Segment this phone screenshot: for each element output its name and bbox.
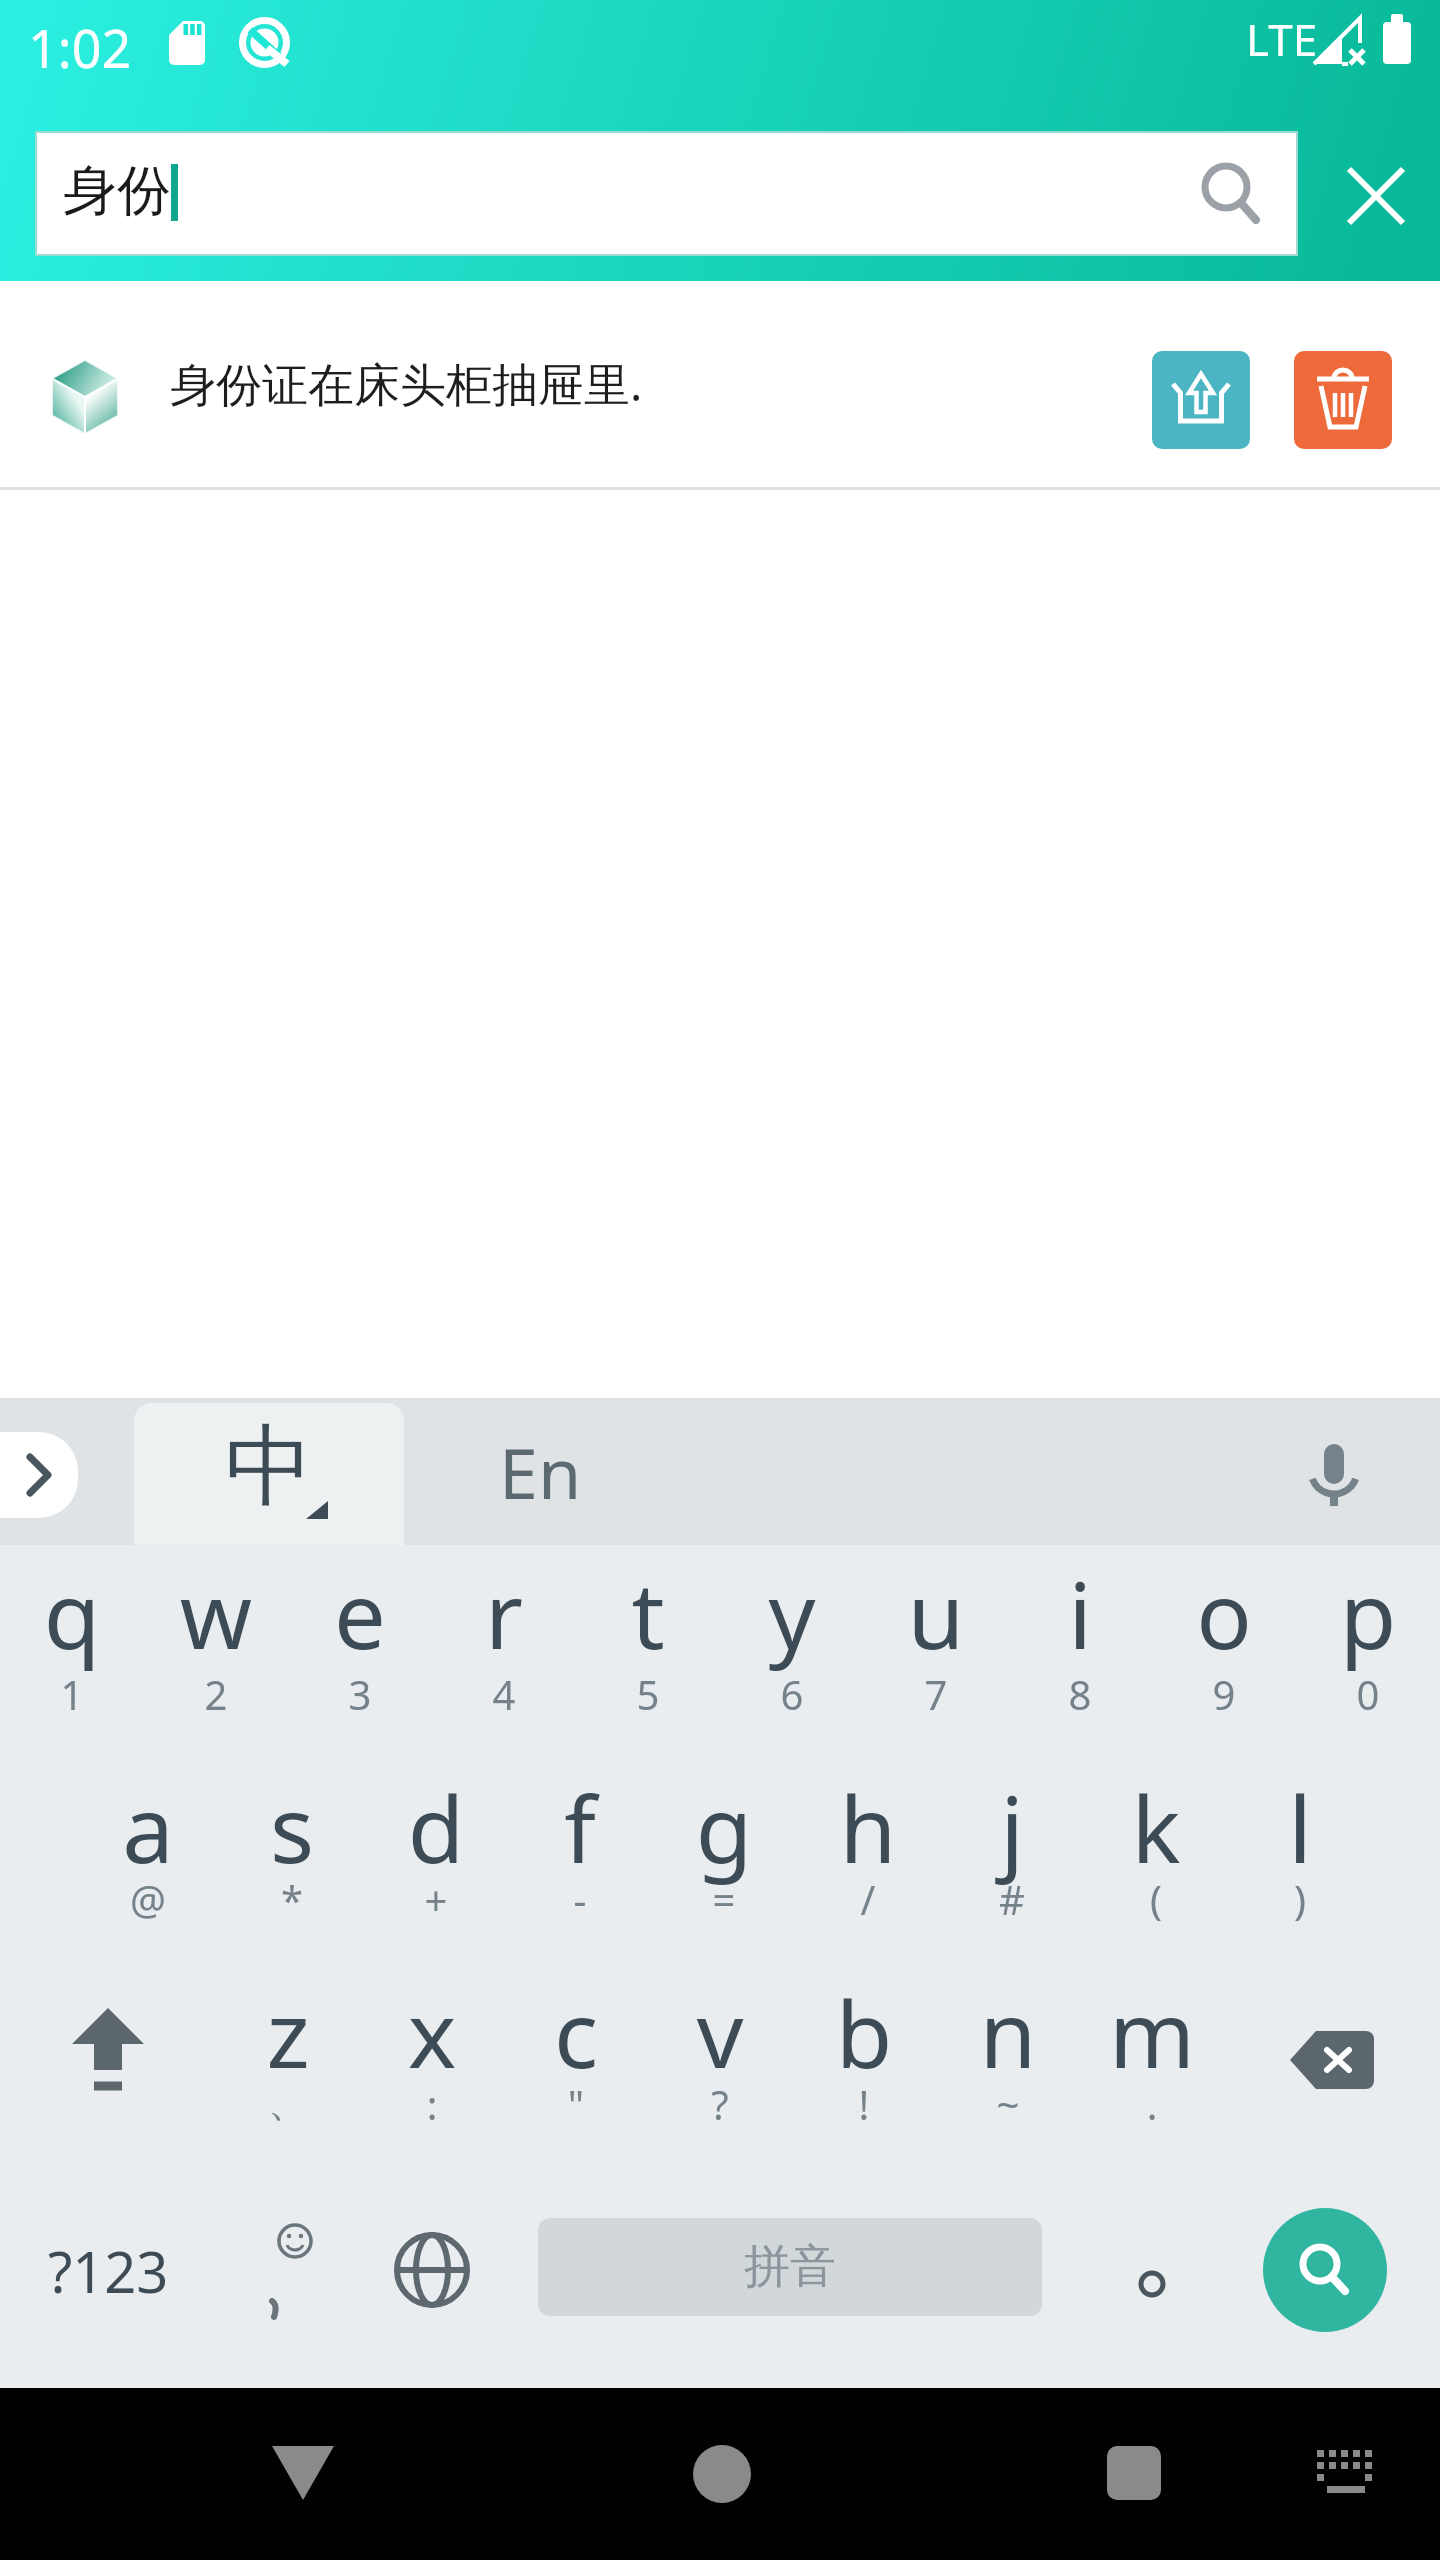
staticText: b xyxy=(792,1970,936,2095)
button[interactable] xyxy=(216,2175,360,2388)
button[interactable]: k xyxy=(1084,1755,1228,1965)
staticText: p xyxy=(1296,1551,1440,1676)
button[interactable]: u xyxy=(864,1545,1008,1755)
button[interactable] xyxy=(1294,351,1392,449)
button[interactable]: o xyxy=(1152,1545,1296,1755)
button[interactable]: 中 xyxy=(134,1403,404,1545)
staticText: g xyxy=(652,1765,796,1890)
button[interactable] xyxy=(1303,1444,1365,1508)
staticText: 9 xyxy=(1152,1667,1296,1721)
staticText: 中 xyxy=(134,1411,404,1522)
staticText: 1:02 xyxy=(28,12,148,83)
button[interactable] xyxy=(1317,2450,1375,2496)
staticText: 7 xyxy=(864,1667,1008,1721)
staticText: - xyxy=(508,1872,652,1926)
button[interactable]: 拼音 xyxy=(538,2218,1042,2316)
staticText: 、 xyxy=(216,2077,360,2127)
staticText: 8 xyxy=(1008,1667,1152,1721)
staticText: c xyxy=(504,1970,648,2095)
staticText: z xyxy=(216,1970,360,2095)
staticText: m xyxy=(1080,1970,1224,2095)
staticText: 1 xyxy=(0,1667,144,1721)
button[interactable]: t xyxy=(576,1545,720,1755)
button[interactable]: 身份证在床头柜抽屉里. xyxy=(0,281,1440,491)
staticText: # xyxy=(940,1872,1084,1926)
button[interactable]: s xyxy=(220,1755,364,1965)
staticText: ) xyxy=(1228,1872,1372,1926)
button[interactable] xyxy=(1107,2446,1163,2502)
staticText: y xyxy=(720,1551,864,1676)
staticText: . xyxy=(1080,2077,1224,2131)
staticText: q xyxy=(0,1551,144,1676)
staticText: 5 xyxy=(576,1667,720,1721)
staticText: ( xyxy=(1084,1872,1228,1926)
staticText: ? xyxy=(648,2077,792,2131)
staticText: x xyxy=(360,1970,504,2095)
staticText: u xyxy=(864,1551,1008,1676)
staticText: 拼音 xyxy=(744,2238,836,2296)
button[interactable]: d xyxy=(364,1755,508,1965)
staticText: d xyxy=(364,1765,508,1890)
staticText: @ xyxy=(76,1872,220,1926)
staticText: o xyxy=(1152,1551,1296,1676)
staticText: " xyxy=(504,2077,648,2131)
button[interactable]: v xyxy=(648,1965,792,2175)
button[interactable] xyxy=(1349,169,1403,223)
button[interactable]: w xyxy=(144,1545,288,1755)
button[interactable]: m xyxy=(1080,1965,1224,2175)
button[interactable] xyxy=(1263,2208,1387,2332)
button[interactable] xyxy=(0,1432,78,1518)
button[interactable]: y xyxy=(720,1545,864,1755)
button[interactable]: n xyxy=(936,1965,1080,2175)
button[interactable] xyxy=(272,2446,334,2500)
staticText: * xyxy=(220,1872,364,1926)
button[interactable]: i xyxy=(1008,1545,1152,1755)
staticText: k xyxy=(1084,1765,1228,1890)
staticText: 6 xyxy=(720,1667,864,1721)
staticText: ?123 xyxy=(48,2233,169,2309)
button[interactable]: z xyxy=(216,1965,360,2175)
staticText: 0 xyxy=(1296,1667,1440,1721)
button[interactable] xyxy=(692,2444,752,2504)
button[interactable]: p xyxy=(1296,1545,1440,1755)
staticText: 3 xyxy=(288,1667,432,1721)
staticText: ~ xyxy=(936,2077,1080,2131)
button[interactable]: r xyxy=(432,1545,576,1755)
button[interactable]: q xyxy=(0,1545,144,1755)
button[interactable]: f xyxy=(508,1755,652,1965)
button[interactable]: j xyxy=(940,1755,1084,1965)
staticText: 4 xyxy=(432,1667,576,1721)
staticText: e xyxy=(288,1551,432,1676)
button[interactable]: h xyxy=(796,1755,940,1965)
staticText: n xyxy=(936,1970,1080,2095)
staticText: v xyxy=(648,1970,792,2095)
button[interactable]: a xyxy=(76,1755,220,1965)
staticText: t xyxy=(576,1551,720,1676)
button[interactable]: g xyxy=(652,1755,796,1965)
staticText: : xyxy=(360,2077,504,2131)
button[interactable]: En xyxy=(440,1398,640,1545)
staticText: l xyxy=(1228,1765,1372,1890)
staticText: / xyxy=(796,1872,940,1926)
button[interactable]: 身份 xyxy=(35,131,1298,256)
staticText: 身份证在床头柜抽屉里. xyxy=(170,352,870,415)
staticText: ! xyxy=(792,2077,936,2131)
button[interactable]: l xyxy=(1228,1755,1372,1965)
staticText: j xyxy=(940,1765,1084,1890)
staticText: i xyxy=(1008,1551,1152,1676)
button[interactable] xyxy=(1152,351,1250,449)
button[interactable] xyxy=(360,2175,504,2388)
staticText: w xyxy=(144,1551,288,1676)
button[interactable]: c xyxy=(504,1965,648,2175)
button[interactable] xyxy=(1224,1965,1440,2175)
button[interactable] xyxy=(1080,2175,1224,2388)
staticText: = xyxy=(652,1872,796,1926)
button[interactable] xyxy=(0,1965,216,2175)
staticText: s xyxy=(220,1765,364,1890)
staticText: LTE xyxy=(1246,9,1366,69)
staticText: h xyxy=(796,1765,940,1890)
button[interactable]: e xyxy=(288,1545,432,1755)
button[interactable]: b xyxy=(792,1965,936,2175)
button[interactable]: x xyxy=(360,1965,504,2175)
button[interactable]: ?123 xyxy=(0,2175,216,2388)
